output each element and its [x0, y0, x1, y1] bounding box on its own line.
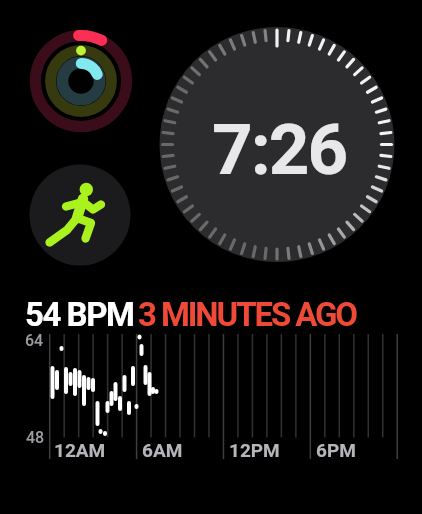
staticText: 64 [25, 331, 44, 350]
staticText: 7:26 [212, 108, 347, 191]
button[interactable] [29, 164, 131, 266]
button[interactable]: 7:26 [179, 99, 379, 199]
staticText: 6AM [142, 439, 183, 461]
staticText: 12AM [54, 439, 106, 461]
button[interactable] [28, 28, 134, 134]
staticText: 6PM [316, 439, 356, 461]
staticText: 12PM [229, 439, 280, 461]
button[interactable]: 3 MINUTES AGO [138, 295, 357, 334]
button[interactable]: 54 BPM [25, 295, 134, 334]
staticText: 48 [26, 428, 45, 447]
